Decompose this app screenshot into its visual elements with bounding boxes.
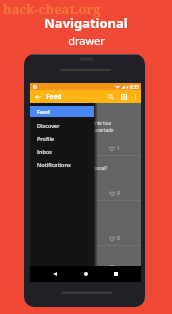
staticText: Inbox [37,148,53,155]
button[interactable]: Home [80,268,92,280]
staticText: 1 [117,145,120,152]
button[interactable]: Pessoal, boa noite a todos, gente boa [30,111,141,156]
button[interactable]: More options [130,90,141,103]
button[interactable]: Notifications [30,158,94,171]
staticText: Espero que todos tenham ter acertado [32,127,114,133]
staticText: 0 [117,190,120,197]
button[interactable]: Recent apps [110,268,122,280]
button[interactable]: Back [49,268,61,280]
button[interactable]: Feed [30,106,94,117]
button[interactable]: Alguem que e seu namorado [30,246,141,266]
button[interactable]: Alguem sabe onde e que e pessoal? [30,156,141,201]
staticText: Pessoal, boa noite a todos, gente boa [32,120,112,126]
staticText: Feed [46,92,62,101]
staticText: drawer [68,33,105,48]
button[interactable]: Inbox [30,145,94,158]
button[interactable]: Ola [30,201,141,246]
staticText: 0 [117,235,120,242]
staticText: Navigational [44,14,128,32]
staticText: Profile [37,135,55,142]
staticText: Feed [37,108,50,115]
staticText: hack-cheat.org [3,0,101,18]
button[interactable]: Navigate up [30,90,46,103]
staticText: Alguem sabe onde e que e pessoal? [32,165,108,171]
staticText: 8:35 [130,84,139,90]
button[interactable]: Discover [30,119,94,132]
button[interactable]: Profile [30,132,94,145]
button[interactable]: Grid view [117,90,130,103]
button[interactable]: Search [104,90,117,103]
staticText: Discover [37,122,60,129]
staticText: Notifications [37,161,71,168]
